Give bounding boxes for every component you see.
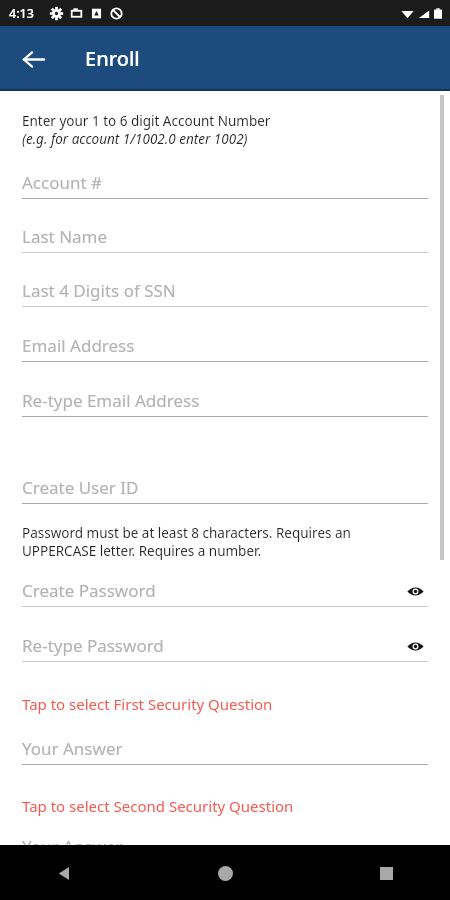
button[interactable]: Last Name — [22, 220, 428, 253]
staticText: Re-type Email Address — [22, 389, 200, 412]
staticText: (e.g. for account 1/1002.0 enter 1002) — [22, 130, 248, 148]
button[interactable]: Navigate up — [11, 37, 55, 81]
staticText: Tap to select First Security Question — [22, 694, 273, 714]
button[interactable]: Create User ID — [22, 471, 428, 504]
staticText: Tap to select Second Security Question — [22, 796, 294, 816]
button[interactable]: Tap to select First Security Question — [22, 688, 428, 720]
staticText: Email Address — [22, 334, 135, 357]
button[interactable]: Recent apps — [362, 849, 410, 897]
staticText: 4:13 — [9, 5, 34, 22]
staticText: Your Answer — [22, 737, 123, 760]
staticText: Account # — [22, 171, 103, 194]
button[interactable]: Re-type Email Address — [22, 384, 428, 417]
button[interactable]: Your Answer — [22, 833, 428, 859]
button[interactable]: Tap to select Second Security Question — [22, 790, 428, 822]
staticText: Enter your 1 to 6 digit Account Number — [22, 112, 271, 130]
staticText: Last 4 Digits of SSN — [22, 279, 176, 302]
button[interactable]: Re-type Password — [22, 629, 428, 662]
staticText: Re-type Password — [22, 634, 164, 657]
button[interactable]: Email Address — [22, 329, 428, 362]
button[interactable]: Show password — [402, 578, 428, 604]
staticText: Create User ID — [22, 476, 139, 499]
staticText: UPPERCASE letter. Requires a number. — [22, 542, 262, 560]
staticText: Enroll — [85, 45, 140, 72]
staticText: Create Password — [22, 579, 156, 602]
staticText: Your Answer — [22, 835, 123, 858]
button[interactable]: Home — [201, 849, 249, 897]
button[interactable]: Your Answer — [22, 732, 428, 765]
button[interactable]: Back — [40, 849, 88, 897]
staticText: Password must be at least 8 characters. … — [22, 524, 351, 542]
button[interactable]: Create Password — [22, 574, 428, 607]
button[interactable]: Show password — [402, 633, 428, 659]
button[interactable]: Last 4 Digits of SSN — [22, 274, 428, 307]
button[interactable]: Account # — [22, 166, 428, 199]
staticText: Last Name — [22, 225, 108, 248]
